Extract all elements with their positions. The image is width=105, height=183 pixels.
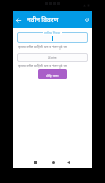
staticText: कृपया वरील माहिती भरा व नंतर पुढे जा: [18, 44, 67, 49]
staticText: नवीन विवरण: [27, 15, 59, 24]
staticText: कृपया वरील माहिती भरा व नंतर पुढे जा: [18, 63, 67, 68]
staticText: तारीख निवडा: [44, 30, 61, 35]
button[interactable]: Back: [64, 158, 72, 166]
button[interactable]: Recents: [31, 158, 39, 166]
staticText: क्रमांक: [48, 55, 57, 60]
button[interactable]: Home: [49, 158, 57, 166]
button[interactable]: सेव्ह करा: [38, 69, 67, 79]
button[interactable]: क्रमांक: [17, 53, 88, 62]
button[interactable]: Refresh: [81, 11, 92, 28]
button[interactable]: Back: [13, 11, 27, 28]
staticText: सेव्ह करा: [46, 73, 59, 78]
button[interactable]: [17, 32, 88, 43]
